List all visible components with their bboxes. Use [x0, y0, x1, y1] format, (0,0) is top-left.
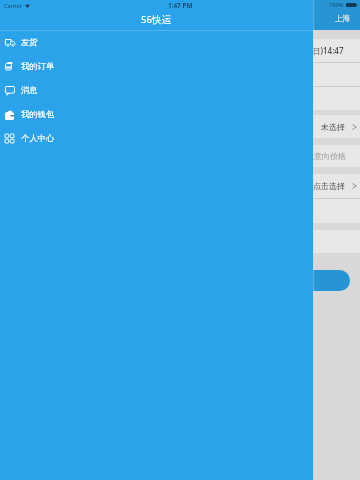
button[interactable]: 发货: [0, 30, 313, 54]
staticText: 目的地: [9, 94, 33, 104]
button[interactable]: 发布货源: [10, 270, 350, 291]
button[interactable]: 消息: [0, 78, 313, 102]
staticText: 始发地: [9, 70, 33, 80]
staticText: 消息: [21, 85, 38, 95]
button[interactable]: 车长车型: [0, 115, 360, 138]
staticText: Carrier: [4, 2, 22, 9]
button[interactable]: 个人中心: [0, 126, 313, 150]
button[interactable]: 上海: [329, 11, 357, 27]
staticText: 56快运: [141, 13, 172, 26]
staticText: 1:47 PM: [168, 1, 193, 10]
button[interactable]: [0, 230, 360, 253]
staticText: 100%: [329, 1, 344, 9]
staticText: 我的钱包: [21, 109, 55, 119]
staticText: 发货时间: [9, 46, 41, 56]
button[interactable]: 目的地: [0, 87, 360, 110]
button[interactable]: 我的订单: [0, 54, 313, 78]
staticText: 未选择: [321, 122, 345, 132]
staticText: 点击选择: [313, 181, 345, 191]
staticText: 我的订单: [21, 61, 55, 71]
button[interactable]: 货物信息: [0, 174, 360, 198]
button[interactable]: 发货时间: [0, 39, 360, 62]
staticText: 发货: [21, 37, 38, 47]
staticText: 请输入意向价格: [290, 151, 346, 161]
button[interactable]: 请输入意向价格: [0, 145, 360, 167]
staticText: 上海: [335, 14, 351, 24]
button[interactable]: 始发地: [0, 63, 360, 86]
staticText: 个人中心: [21, 133, 55, 143]
button[interactable]: 备注: [0, 199, 360, 223]
staticText: (明日)14:47: [302, 45, 344, 56]
button[interactable]: 我的钱包: [0, 102, 313, 126]
